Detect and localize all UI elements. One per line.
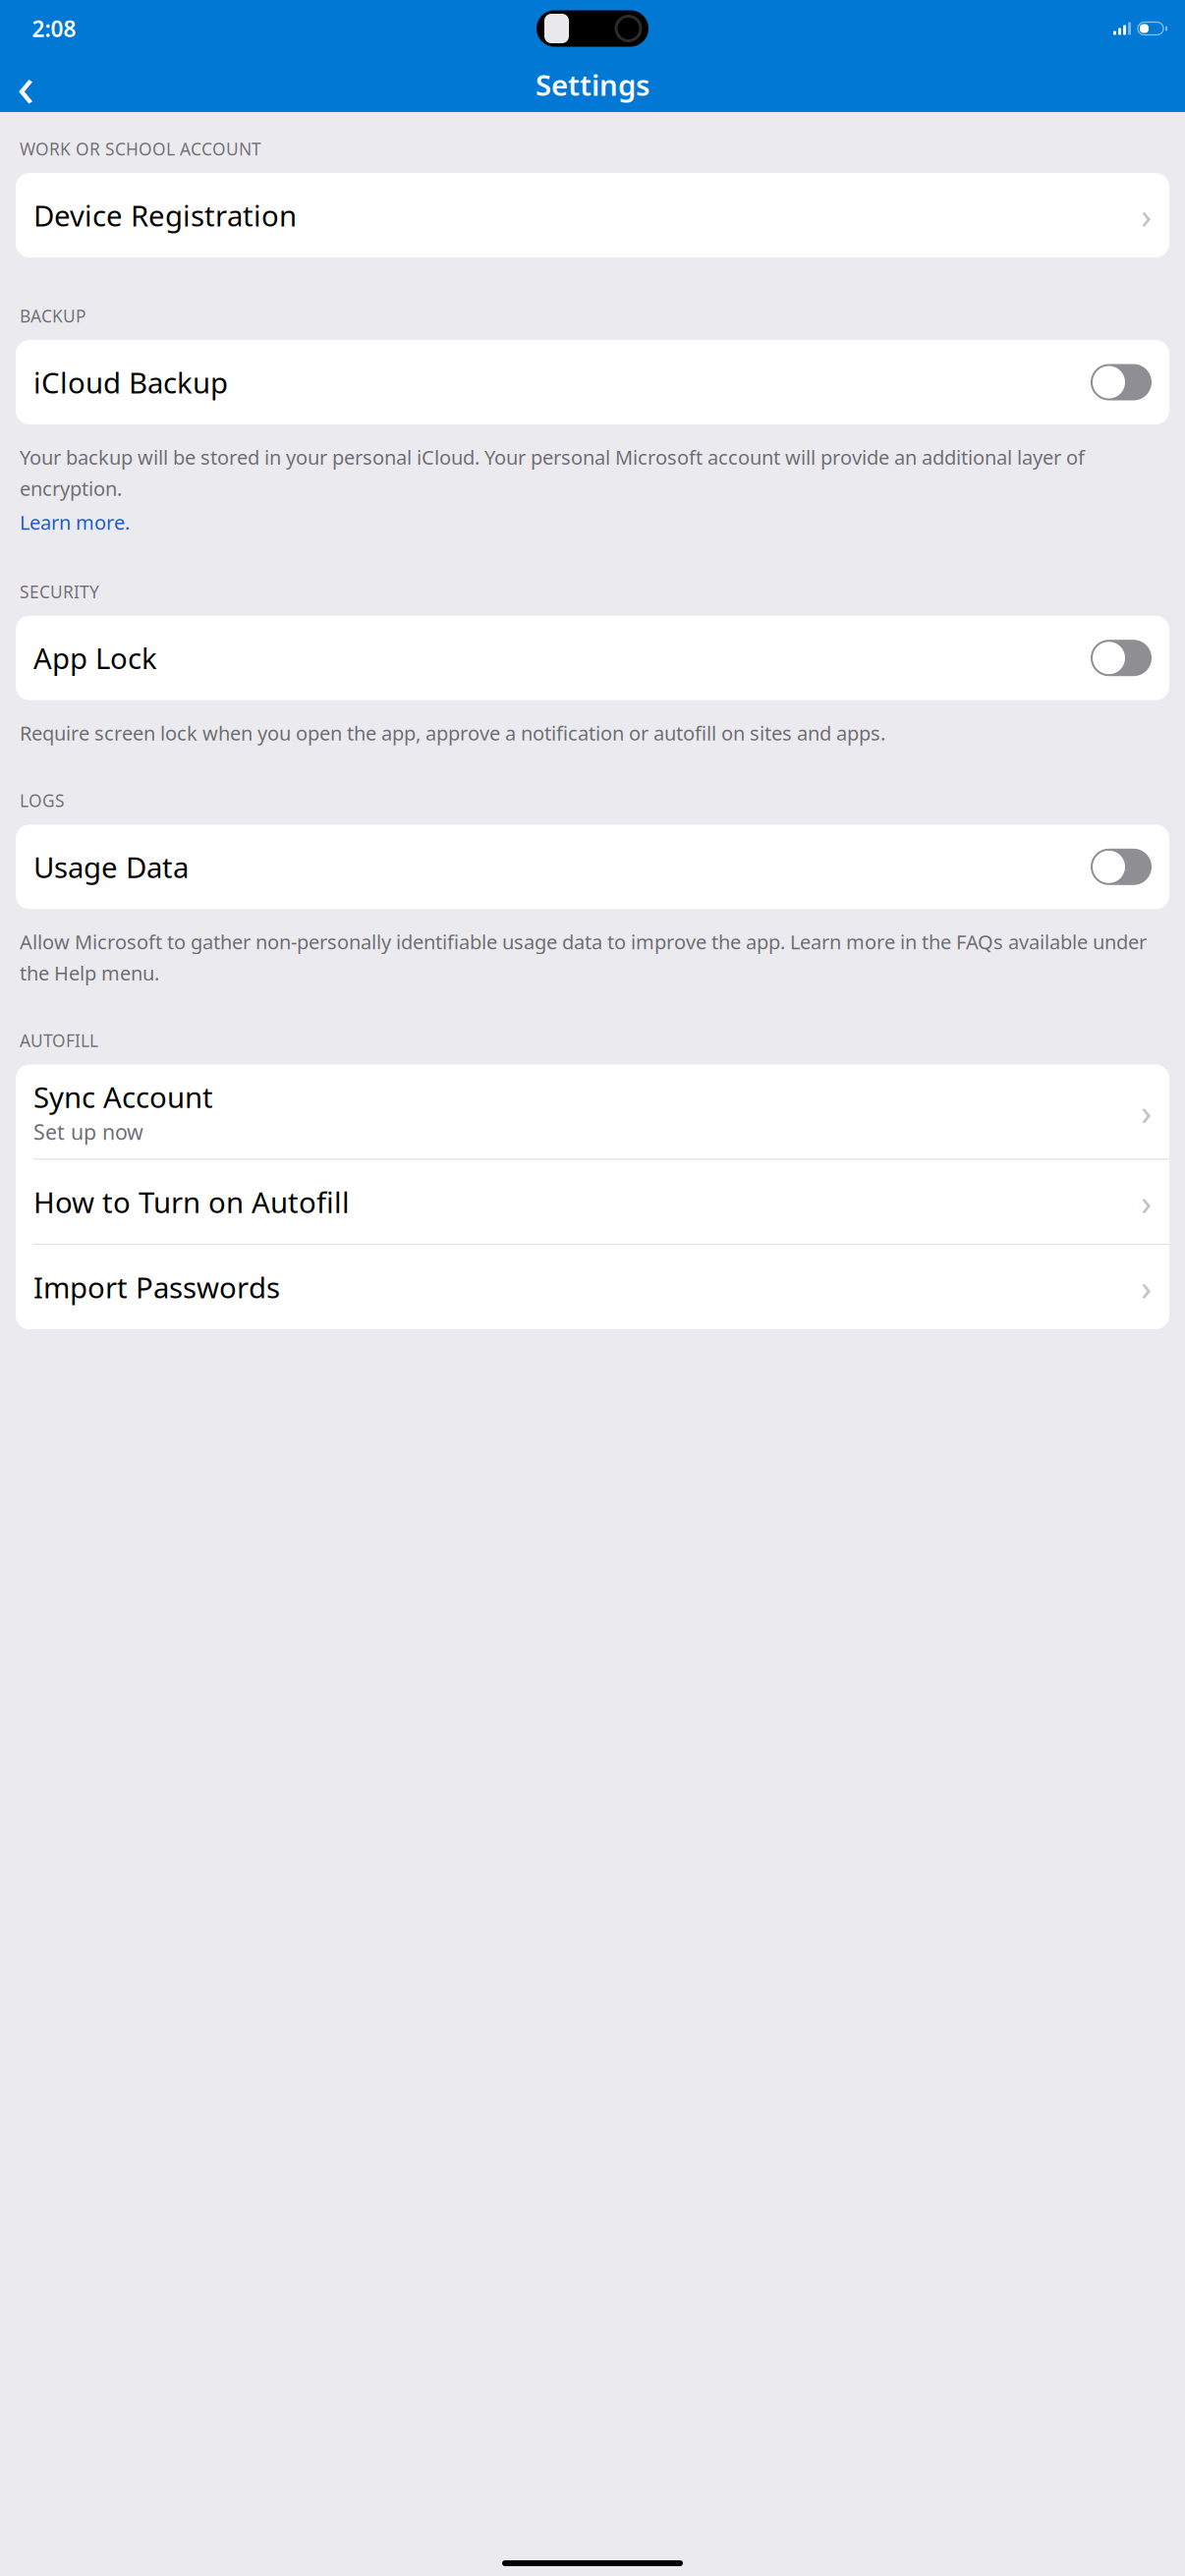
staticText: Allow Microsoft to gather non-personally… [20, 929, 1147, 986]
staticText: Require screen lock when you open the ap… [20, 720, 885, 746]
staticText: iCloud Backup [33, 363, 228, 401]
staticText: Sync Account [33, 1078, 213, 1116]
button[interactable]: Back [0, 63, 51, 106]
staticText: WORK OR SCHOOL ACCOUNT [20, 138, 261, 160]
staticText: Import Passwords [33, 1268, 280, 1306]
staticText: AUTOFILL [20, 1029, 98, 1052]
button[interactable]: iCloud Backup [16, 340, 1169, 424]
staticText: App Lock [33, 639, 157, 677]
button[interactable]: Import Passwords [16, 1245, 1169, 1329]
staticText: LOGS [20, 789, 65, 812]
staticText: › [1141, 1178, 1152, 1225]
staticText: › [1141, 1088, 1152, 1135]
button[interactable]: Sync Account [16, 1064, 1169, 1159]
button[interactable]: How to Turn on Autofill [16, 1159, 1169, 1244]
staticText: Your backup will be stored in your perso… [20, 444, 1085, 501]
staticText: How to Turn on Autofill [33, 1183, 350, 1221]
staticText: Device Registration [33, 196, 297, 234]
staticText: BACKUP [20, 305, 85, 327]
button[interactable]: Learn more. [0, 507, 149, 537]
button[interactable]: Usage Data [16, 825, 1169, 909]
button[interactable]: App Lock [16, 616, 1169, 700]
staticText: Learn more. [20, 509, 130, 535]
staticText: ‹ [17, 46, 34, 123]
staticText: › [1141, 1264, 1152, 1310]
staticText: Set up now [33, 1118, 143, 1146]
staticText: SECURITY [20, 580, 99, 603]
staticText: Settings [536, 65, 649, 104]
button[interactable]: Device Registration [16, 173, 1169, 257]
staticText: Usage Data [33, 848, 189, 886]
staticText: 2:08 [32, 14, 76, 43]
staticText: › [1141, 192, 1152, 239]
